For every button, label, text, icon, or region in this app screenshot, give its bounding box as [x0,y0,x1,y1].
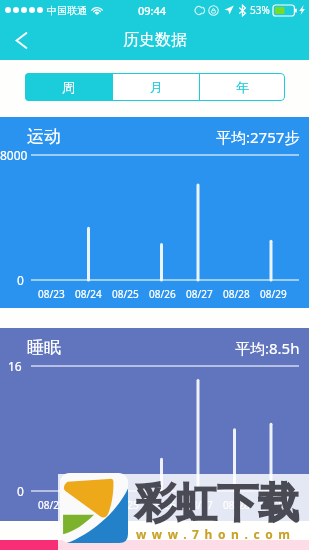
staticText: 08/27 [186,498,213,512]
button[interactable]: 年 [200,73,285,101]
staticText: 08/28 [223,287,250,301]
staticText: 08/25 [112,287,139,301]
staticText: 历史数据 [123,30,187,50]
staticText: 08/23 [38,498,65,512]
staticText: 年 [236,79,249,95]
staticText: 08/26 [149,287,176,301]
staticText: 周 [62,79,75,95]
staticText: 彩虹下载 [135,478,299,530]
staticText: 月 [150,79,163,95]
staticText: 53% [250,3,270,17]
staticText: 08/27 [186,287,213,301]
staticText: 08/29 [260,498,287,512]
button[interactable]: 月 [113,73,199,101]
staticText: 0 [17,483,24,499]
staticText: www.7hon.com [136,526,296,542]
button[interactable]: 周 [25,73,112,101]
staticText: 8000 [0,147,28,163]
staticText: 08/28 [223,498,250,512]
staticText: 08/26 [149,498,176,512]
staticText: 平均:2757步 [216,127,300,147]
staticText: 09:44 [138,3,167,18]
staticText: 08/23 [38,287,65,301]
staticText: 08/24 [75,498,102,512]
staticText: 运动 [27,126,61,147]
staticText: 08/25 [112,498,139,512]
staticText: 平均:8.5h [235,338,300,358]
staticText: 08/29 [260,287,287,301]
staticText: 中国联通 [47,4,87,17]
staticText: 0 [17,272,24,288]
staticText: 08/24 [75,287,102,301]
staticText: 睡眠 [27,337,61,358]
button[interactable]: Back [0,20,44,60]
staticText: 16 [8,358,22,374]
